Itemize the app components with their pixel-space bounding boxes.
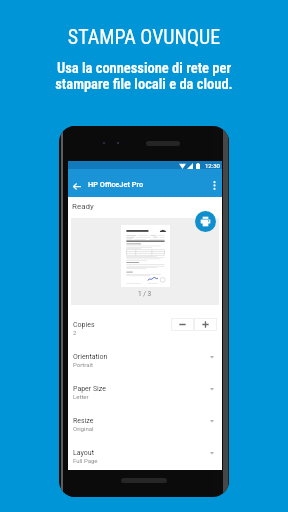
button[interactable]: Decrease copies xyxy=(171,318,194,331)
button[interactable]: Increase copies xyxy=(194,318,217,331)
button[interactable]: Paper Size xyxy=(68,380,222,412)
staticText: Letter xyxy=(73,393,89,400)
staticText: Usa la connessione di rete per stampare … xyxy=(0,60,288,93)
button[interactable]: Layout xyxy=(68,444,222,470)
staticText: HP OfficeJet Pro xyxy=(88,180,144,189)
staticText: 1 / 3 xyxy=(138,290,152,298)
staticText: Orientation xyxy=(73,353,108,361)
staticText: Layout xyxy=(73,449,94,457)
staticText: Resize xyxy=(73,417,94,425)
button[interactable]: Resize xyxy=(68,412,222,444)
staticText: Full Page xyxy=(73,457,98,464)
button[interactable]: Back xyxy=(69,179,84,194)
button[interactable]: Copies xyxy=(68,316,222,348)
staticText: Original xyxy=(73,425,94,432)
staticText: 12:30 xyxy=(205,162,220,169)
staticText: STAMPA OVUNQUE xyxy=(0,25,288,48)
button[interactable]: Orientation xyxy=(68,348,222,380)
button[interactable]: More options xyxy=(207,178,221,192)
staticText: Ready xyxy=(72,202,94,211)
staticText: Paper Size xyxy=(73,385,106,393)
staticText: Copies xyxy=(73,321,95,329)
staticText: 2 xyxy=(73,329,77,336)
staticText: Portrait xyxy=(73,361,93,368)
button[interactable]: Print xyxy=(195,211,216,232)
